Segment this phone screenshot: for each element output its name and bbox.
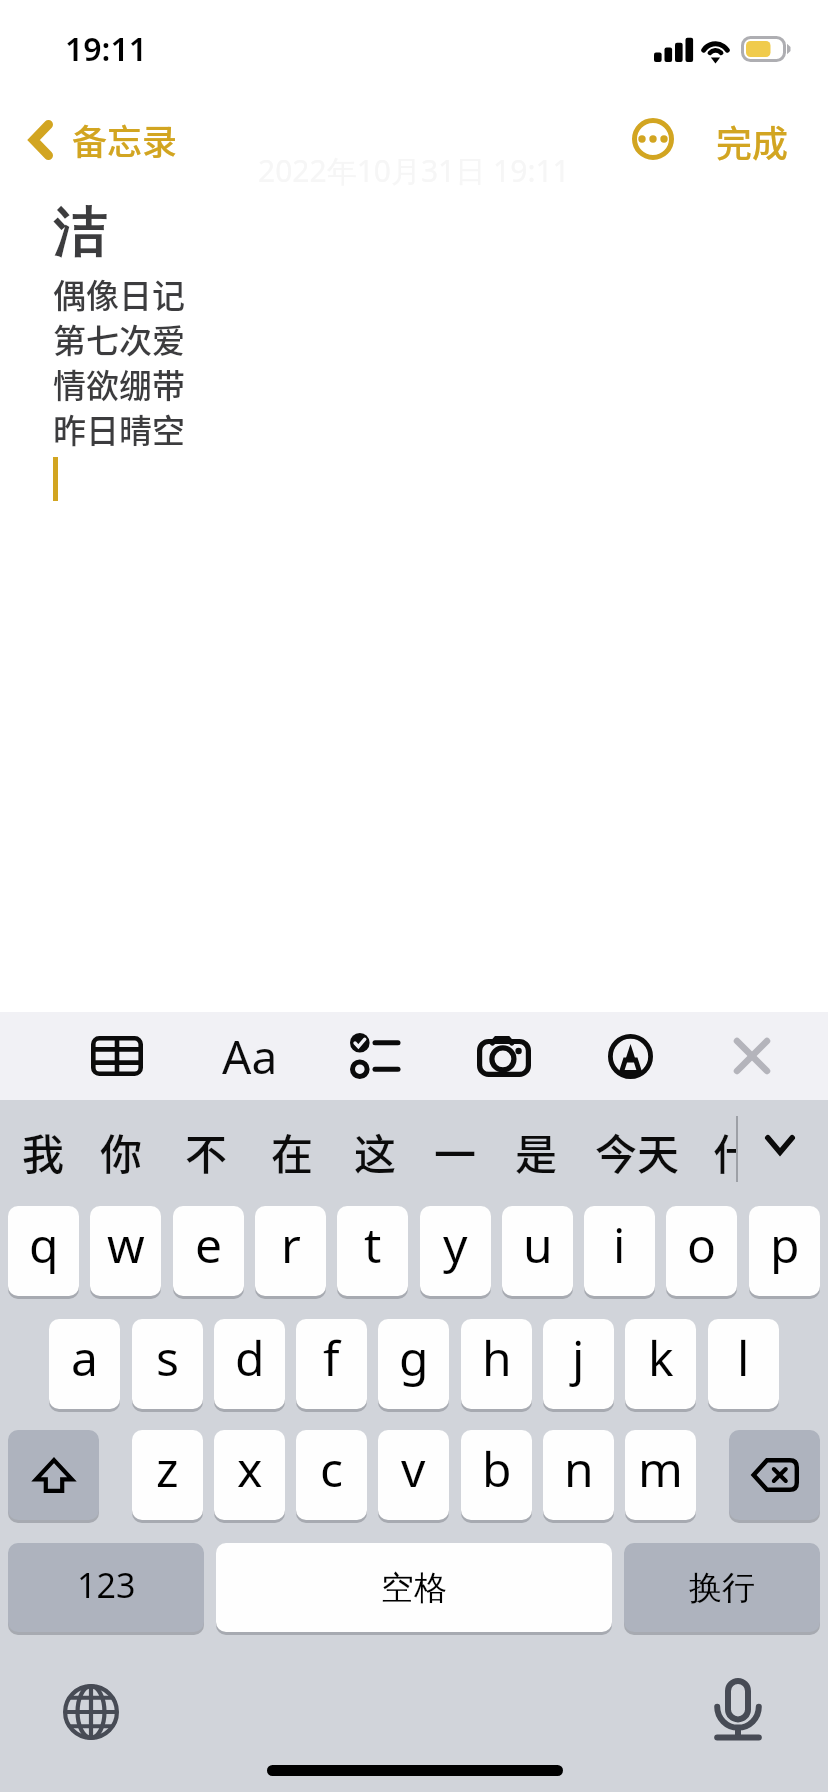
staticText: n <box>564 1436 594 1501</box>
button[interactable]: 备忘录 <box>17 104 190 175</box>
button[interactable]: b <box>461 1430 532 1520</box>
button[interactable]: i <box>584 1206 655 1296</box>
staticText: h <box>482 1325 512 1390</box>
staticText: e <box>195 1212 223 1277</box>
button[interactable]: g <box>378 1319 449 1409</box>
button[interactable]: 你 <box>100 1118 142 1184</box>
button[interactable]: 不 <box>185 1118 227 1184</box>
staticText: z <box>156 1436 179 1501</box>
staticText: v <box>401 1436 426 1501</box>
staticText: 2022年10月31日 19:11 <box>258 150 570 191</box>
staticText: 这 <box>354 1121 396 1182</box>
staticText: 今天 <box>595 1121 679 1182</box>
staticText: 换行 <box>689 1567 755 1609</box>
button[interactable]: 完成 <box>700 99 805 183</box>
button[interactable]: t <box>337 1206 408 1296</box>
staticText: y <box>443 1212 468 1277</box>
staticText: 123 <box>77 1562 136 1608</box>
staticText: 什 <box>713 1121 736 1182</box>
staticText: i <box>613 1212 626 1277</box>
staticText: 是 <box>515 1121 557 1182</box>
button[interactable]: c <box>296 1430 367 1520</box>
staticText: 你 <box>100 1121 142 1182</box>
button[interactable]: 一 <box>434 1118 476 1184</box>
staticText: 在 <box>271 1121 313 1182</box>
staticText: c <box>320 1436 344 1501</box>
button[interactable]: q <box>8 1206 79 1296</box>
staticText: r <box>281 1212 301 1277</box>
button[interactable]: v <box>378 1430 449 1520</box>
staticText: a <box>71 1325 98 1390</box>
staticText: m <box>638 1436 683 1501</box>
button[interactable]: x <box>214 1430 285 1520</box>
staticText: f <box>323 1325 340 1390</box>
button[interactable]: Checklist <box>331 1012 419 1100</box>
button[interactable]: 在 <box>271 1118 313 1184</box>
button[interactable]: 123 <box>8 1543 204 1632</box>
button[interactable]: Backspace <box>729 1430 820 1520</box>
button[interactable]: o <box>666 1206 737 1296</box>
button[interactable]: 今天 <box>595 1118 679 1184</box>
button[interactable]: 是 <box>515 1118 557 1184</box>
button[interactable]: k <box>625 1319 696 1409</box>
button[interactable]: 换行 <box>624 1543 820 1632</box>
button[interactable]: h <box>461 1319 532 1409</box>
button[interactable]: Camera <box>460 1012 548 1100</box>
staticText: l <box>737 1325 750 1390</box>
button[interactable]: a <box>49 1319 120 1409</box>
button[interactable]: Markup <box>586 1012 674 1100</box>
button[interactable]: Text format <box>206 1012 294 1100</box>
staticText: Aa <box>222 1025 278 1088</box>
staticText: w <box>107 1212 145 1277</box>
button[interactable]: Show more candidates <box>748 1112 812 1178</box>
button[interactable]: j <box>543 1319 614 1409</box>
button[interactable]: d <box>214 1319 285 1409</box>
button[interactable]: 我 <box>22 1118 64 1184</box>
button[interactable]: 这 <box>354 1118 396 1184</box>
staticText: p <box>770 1212 800 1277</box>
staticText: d <box>235 1325 265 1390</box>
button[interactable]: p <box>749 1206 820 1296</box>
button[interactable]: 空格 <box>216 1543 612 1632</box>
button[interactable]: w <box>90 1206 161 1296</box>
staticText: 一 <box>434 1121 476 1182</box>
staticText: k <box>648 1325 674 1390</box>
staticText: 洁 <box>53 200 106 267</box>
staticText: 我 <box>22 1121 64 1182</box>
button[interactable]: u <box>502 1206 573 1296</box>
button[interactable]: Close keyboard <box>708 1012 796 1100</box>
button[interactable]: l <box>708 1319 779 1409</box>
staticText: x <box>237 1436 263 1501</box>
staticText: 偶像日记 第七次爱 情欲绷带 昨日晴空 <box>53 270 185 453</box>
staticText: 19:11 <box>65 27 148 71</box>
staticText: q <box>29 1212 59 1277</box>
button[interactable]: s <box>132 1319 203 1409</box>
button[interactable]: f <box>296 1319 367 1409</box>
button[interactable]: y <box>420 1206 491 1296</box>
button[interactable]: e <box>173 1206 244 1296</box>
staticText: 完成 <box>716 115 789 167</box>
button[interactable]: r <box>255 1206 326 1296</box>
staticText: t <box>364 1212 382 1277</box>
button[interactable]: 什 <box>713 1118 736 1184</box>
button[interactable]: More options <box>616 102 690 176</box>
button[interactable]: Next keyboard <box>54 1675 128 1749</box>
staticText: j <box>572 1325 585 1390</box>
button[interactable]: Shift <box>8 1430 99 1520</box>
staticText: b <box>482 1436 512 1501</box>
button[interactable]: m <box>625 1430 696 1520</box>
staticText: 空格 <box>381 1567 447 1609</box>
staticText: u <box>523 1212 553 1277</box>
staticText: 备忘录 <box>72 114 178 165</box>
button[interactable]: n <box>543 1430 614 1520</box>
button[interactable]: z <box>132 1430 203 1520</box>
staticText: o <box>687 1212 717 1277</box>
staticText: s <box>156 1325 179 1390</box>
staticText: 不 <box>185 1121 227 1182</box>
staticText: g <box>399 1325 429 1390</box>
button[interactable]: Insert table <box>73 1012 161 1100</box>
button[interactable]: Dictation <box>701 1673 775 1747</box>
